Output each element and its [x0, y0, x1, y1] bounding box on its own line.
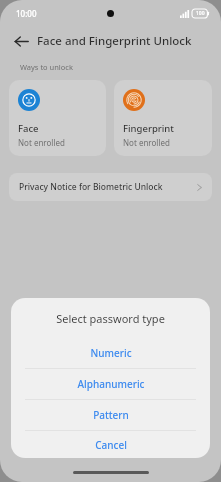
button[interactable]: Face	[9, 80, 106, 156]
staticText: Privacy Notice for Biometric Unlock	[19, 181, 163, 193]
staticText: Ways to unlock	[20, 62, 73, 72]
staticText: 10:00	[16, 8, 37, 19]
staticText: Fingerprint	[123, 122, 174, 135]
staticText: Numeric	[90, 346, 132, 360]
button[interactable]: Pattern	[11, 400, 210, 430]
button[interactable]: Fingerprint	[114, 80, 212, 156]
staticText: Select password type	[56, 311, 165, 326]
staticText: Alphanumeric	[77, 377, 145, 391]
staticText: 100	[196, 10, 205, 17]
button[interactable]: Alphanumeric	[11, 369, 210, 399]
staticText: Face and Fingerprint Unlock	[37, 33, 192, 49]
staticText: Not enrolled	[123, 137, 170, 148]
staticText: Not enrolled	[18, 137, 65, 148]
button[interactable]: Cancel	[11, 431, 210, 458]
button[interactable]: Privacy Notice for Biometric Unlock	[9, 173, 212, 201]
staticText: Pattern	[93, 408, 129, 422]
button[interactable]: Back	[8, 28, 34, 54]
staticText: Cancel	[95, 438, 127, 452]
button[interactable]: Numeric	[11, 338, 210, 368]
staticText: Face	[18, 122, 39, 135]
